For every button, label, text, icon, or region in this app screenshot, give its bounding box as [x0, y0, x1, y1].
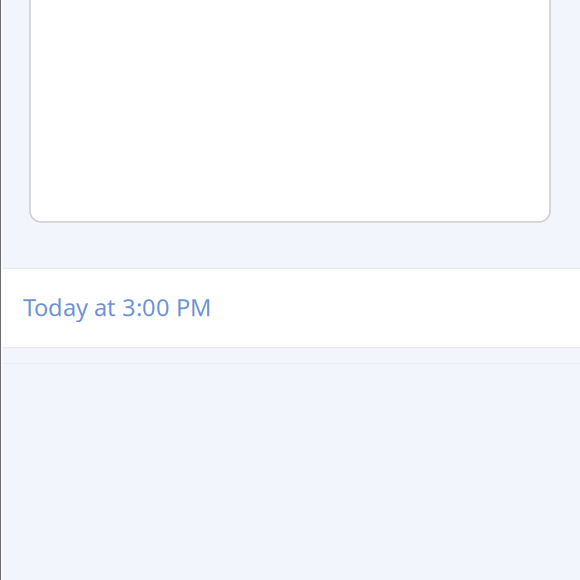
staticText: Today at 3:00 PM: [23, 291, 211, 323]
button[interactable]: Today at 3:00 PM: [0, 268, 580, 348]
